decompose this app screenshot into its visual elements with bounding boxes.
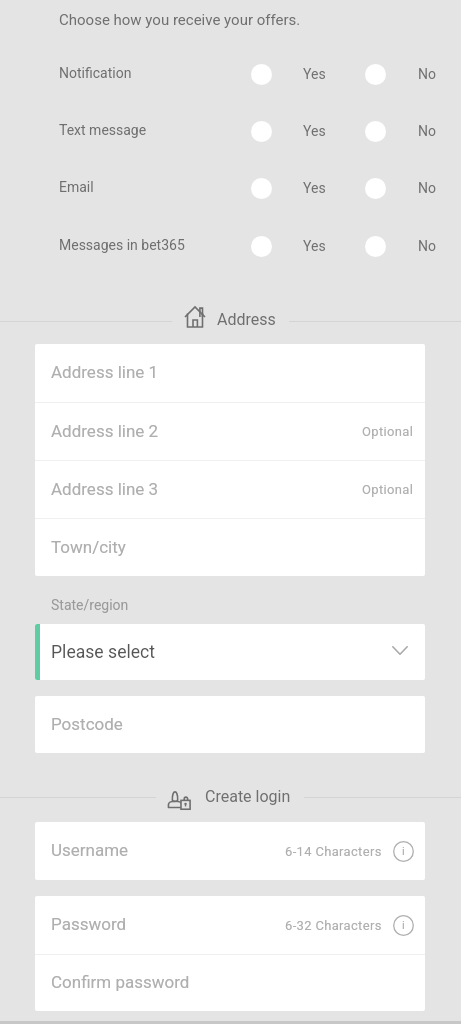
staticText: Yes (303, 66, 326, 82)
button[interactable]: Please select (35, 624, 425, 680)
staticText: Create login (205, 787, 291, 806)
staticText: No (418, 66, 436, 82)
staticText: Address line 3 (51, 479, 159, 499)
button[interactable]: More information (393, 915, 414, 936)
button[interactable]: Town/city (35, 519, 425, 576)
staticText: Optional (362, 482, 414, 497)
button[interactable]: Confirm password (35, 955, 425, 1011)
button[interactable]: Postcode (35, 696, 425, 753)
staticText: i (402, 919, 405, 932)
staticText: Password (51, 914, 127, 934)
button[interactable]: Yes (251, 114, 326, 148)
staticText: Yes (303, 123, 326, 139)
button[interactable]: Yes (251, 229, 326, 263)
button[interactable]: No (365, 229, 436, 263)
staticText: No (418, 180, 436, 196)
staticText: State/region (51, 597, 129, 613)
staticText: No (418, 123, 436, 139)
button[interactable]: Username (35, 822, 425, 880)
button[interactable]: Yes (251, 57, 326, 91)
staticText: Please select (51, 642, 156, 663)
staticText: Address line 2 (51, 421, 159, 441)
staticText: Address (217, 310, 276, 329)
button[interactable]: No (365, 57, 436, 91)
staticText: Username (51, 840, 129, 860)
staticText: Postcode (51, 714, 123, 734)
staticText: Email (59, 179, 94, 195)
button[interactable]: Address line 3 (35, 461, 425, 518)
button[interactable]: More information (393, 841, 414, 862)
button[interactable]: Address line 1 (35, 344, 425, 402)
staticText: 6-32 Characters (285, 918, 382, 933)
button[interactable]: Address line 2 (35, 403, 425, 460)
staticText: Yes (303, 180, 326, 196)
staticText: Notification (59, 65, 132, 81)
staticText: Confirm password (51, 972, 190, 992)
staticText: Optional (362, 424, 414, 439)
staticText: Messages in bet365 (59, 237, 185, 253)
staticText: Town/city (51, 537, 126, 557)
button[interactable]: No (365, 171, 436, 205)
other: Open state/region list (389, 639, 411, 661)
staticText: Choose how you receive your offers. (59, 11, 301, 29)
staticText: Yes (303, 238, 326, 254)
staticText: Address line 1 (51, 362, 159, 382)
button[interactable]: Yes (251, 171, 326, 205)
button[interactable]: No (365, 114, 436, 148)
staticText: No (418, 238, 436, 254)
button[interactable]: Password (35, 896, 425, 954)
staticText: Text message (59, 122, 147, 138)
staticText: 6-14 Characters (285, 844, 382, 859)
staticText: i (402, 845, 405, 858)
